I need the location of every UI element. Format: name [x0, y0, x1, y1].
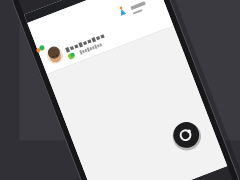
button[interactable]: Phone mockup showing contact list app: [0, 0, 240, 180]
